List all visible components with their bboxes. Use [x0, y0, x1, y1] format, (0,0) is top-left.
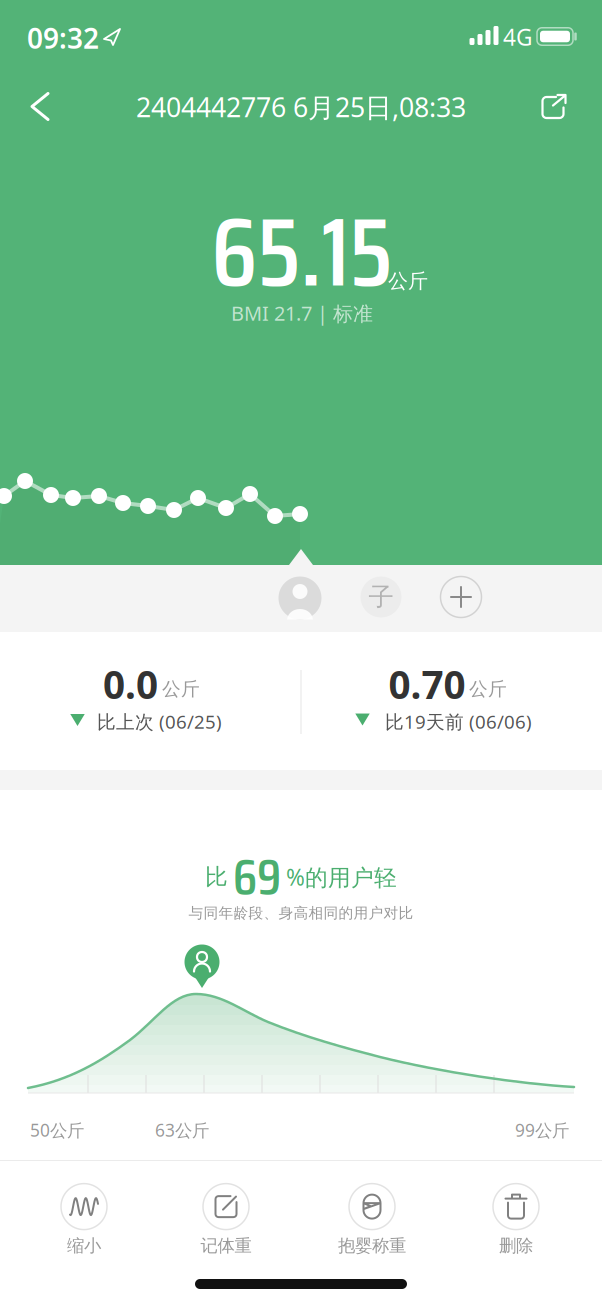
staticText: 缩小 [67, 1235, 101, 1256]
staticText: 50公斤 [30, 1118, 84, 1141]
staticText: 公斤 [162, 677, 200, 700]
staticText: 比 [205, 863, 228, 891]
button[interactable]: 抱婴称重 [307, 1174, 437, 1266]
staticText: 99公斤 [515, 1118, 569, 1141]
button[interactable]: Share [531, 84, 576, 129]
staticText: 比上次 (06/25) [97, 709, 222, 734]
staticText: 记体重 [200, 1235, 251, 1256]
staticText: 63公斤 [155, 1118, 209, 1141]
staticText: 与同年龄段、身高相同的用户对比 [188, 904, 413, 922]
staticText: 2404442776 6月25日,08:33 [136, 89, 466, 125]
staticText: 69 [233, 837, 281, 917]
staticText: 公斤 [388, 269, 428, 293]
staticText: BMI 21.7 | 标准 [231, 300, 373, 326]
staticText: 0.0 [103, 658, 158, 710]
staticText: 比19天前 (06/06) [385, 709, 532, 734]
staticText: 65.15 [211, 176, 392, 327]
staticText: %的用户轻 [286, 862, 397, 892]
staticText: 4G [503, 22, 533, 52]
button[interactable]: 删除 [451, 1174, 581, 1266]
button[interactable]: Back [18, 79, 62, 133]
staticText: 删除 [499, 1235, 533, 1256]
staticText: 09:32 [27, 19, 99, 57]
staticText: 子 [368, 581, 393, 612]
button[interactable]: Child profile [359, 575, 403, 619]
button[interactable]: 记体重 [161, 1174, 291, 1266]
staticText: 抱婴称重 [338, 1235, 406, 1256]
button[interactable]: 缩小 [19, 1174, 149, 1266]
staticText: 0.70 [388, 658, 465, 710]
button[interactable]: Add profile [439, 575, 483, 619]
button[interactable]: User profile [278, 576, 322, 620]
staticText: 公斤 [469, 677, 507, 700]
